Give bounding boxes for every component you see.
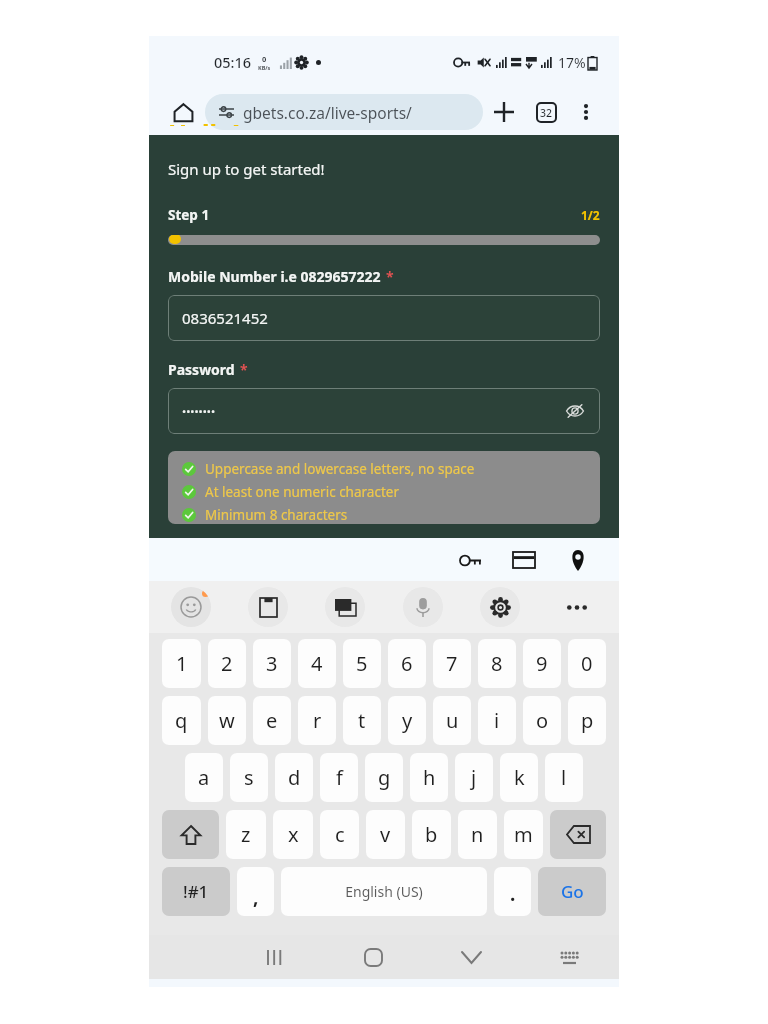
button[interactable]: Home <box>353 937 393 977</box>
staticText: 5 <box>356 650 368 677</box>
button[interactable]: n <box>458 810 497 859</box>
button[interactable]: 3 <box>253 639 291 688</box>
button[interactable]: Home <box>163 92 203 132</box>
staticText: 2 <box>221 650 233 677</box>
button[interactable]: i <box>478 696 516 745</box>
button[interactable]: Keyboard settings <box>480 587 520 627</box>
staticText: * <box>386 267 394 286</box>
button[interactable]: 2 <box>208 639 246 688</box>
staticText: Hello! <box>168 116 240 126</box>
button[interactable]: . <box>494 867 531 916</box>
button[interactable]: Voice input <box>403 587 443 627</box>
button[interactable]: w <box>208 696 246 745</box>
staticText: Go <box>561 880 584 903</box>
button[interactable]: Backspace <box>550 810 606 859</box>
button[interactable]: p <box>568 696 606 745</box>
button[interactable]: Emoji <box>171 587 211 627</box>
button[interactable]: More <box>557 587 597 627</box>
staticText: b <box>425 821 438 848</box>
staticText: English (US) <box>345 882 423 901</box>
staticText: 32 <box>540 106 553 120</box>
staticText: •••••••• <box>182 404 216 419</box>
button[interactable]: !#1 <box>162 867 230 916</box>
button[interactable]: 4 <box>298 639 336 688</box>
button[interactable]: b <box>412 810 451 859</box>
button[interactable]: New tab <box>483 91 525 133</box>
button[interactable]: 6 <box>388 639 426 688</box>
button[interactable]: Shift <box>162 810 219 859</box>
staticText: p <box>581 707 594 734</box>
button[interactable]: f <box>320 753 358 802</box>
button[interactable]: 1 <box>162 639 201 688</box>
staticText: 1 <box>176 650 188 677</box>
button[interactable]: x <box>273 810 313 859</box>
button[interactable]: Payment methods <box>505 541 543 579</box>
staticText: Mobile Number i.e 0829657222 <box>168 267 381 286</box>
button[interactable]: , <box>237 867 274 916</box>
button[interactable]: 0836521452 <box>168 295 600 341</box>
button[interactable]: Tabs, 32 open <box>525 91 567 133</box>
staticText: 0836521452 <box>182 308 268 328</box>
staticText: Password <box>168 360 235 379</box>
button[interactable]: v <box>366 810 405 859</box>
button[interactable]: e <box>253 696 291 745</box>
staticText: 8 <box>491 650 503 677</box>
staticText: n <box>471 821 484 848</box>
button[interactable]: t <box>343 696 381 745</box>
staticText: KB/s <box>258 64 271 71</box>
button[interactable]: k <box>500 753 538 802</box>
staticText: * <box>240 360 248 379</box>
staticText: o <box>536 707 549 734</box>
button[interactable]: Recent apps <box>255 937 295 977</box>
button[interactable]: 5 <box>343 639 381 688</box>
button[interactable]: 8 <box>478 639 516 688</box>
button[interactable]: a <box>185 753 223 802</box>
staticText: x <box>288 821 299 848</box>
button[interactable]: s <box>230 753 268 802</box>
staticText: v <box>380 821 391 848</box>
staticText: y <box>402 707 413 734</box>
button[interactable]: Change keyboard <box>549 937 589 977</box>
button[interactable]: More options <box>567 93 605 131</box>
staticText: 17% <box>558 53 586 72</box>
button[interactable]: h <box>410 753 448 802</box>
button[interactable]: y <box>388 696 426 745</box>
button[interactable]: Go <box>538 867 606 916</box>
button[interactable]: Show password <box>562 398 588 424</box>
staticText: 0 <box>262 54 267 64</box>
staticText: Sign up to get started! <box>168 159 325 179</box>
staticText: j <box>471 764 477 791</box>
staticText: 05:16 <box>214 52 252 72</box>
button[interactable]: j <box>455 753 493 802</box>
staticText: u <box>446 707 459 734</box>
staticText: , <box>253 884 259 910</box>
staticText: t <box>358 707 366 734</box>
button[interactable]: r <box>298 696 336 745</box>
button[interactable]: 0 <box>568 639 606 688</box>
button[interactable]: 7 <box>433 639 471 688</box>
button[interactable]: q <box>162 696 201 745</box>
staticText: At least one numeric character <box>205 483 399 501</box>
button[interactable]: Hide keyboard <box>451 937 491 977</box>
button[interactable]: 9 <box>523 639 561 688</box>
button[interactable]: o <box>523 696 561 745</box>
button[interactable]: l <box>545 753 583 802</box>
button[interactable]: Keyboard modes <box>325 587 365 627</box>
staticText: c <box>335 821 345 848</box>
button[interactable]: Addresses <box>559 541 597 579</box>
staticText: . <box>510 881 516 907</box>
button[interactable]: m <box>504 810 543 859</box>
button[interactable]: English (US) <box>281 867 487 916</box>
staticText: a <box>198 764 210 791</box>
button[interactable]: Passwords <box>451 541 489 579</box>
button[interactable]: d <box>275 753 313 802</box>
button[interactable]: c <box>320 810 359 859</box>
staticText: z <box>241 821 251 848</box>
staticText: e <box>266 707 278 734</box>
button[interactable]: Clipboard <box>248 587 288 627</box>
button[interactable]: z <box>226 810 266 859</box>
button[interactable]: g <box>365 753 403 802</box>
button[interactable]: u <box>433 696 471 745</box>
button[interactable]: •••••••• <box>168 388 600 434</box>
button[interactable]: gbets.co.za/live-sports/ <box>205 94 483 130</box>
